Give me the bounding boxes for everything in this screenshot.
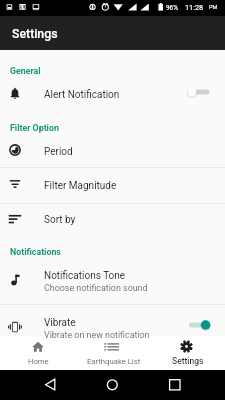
button[interactable]: Home [90, 370, 135, 400]
button[interactable] [0, 204, 225, 238]
button[interactable] [0, 133, 225, 167]
button[interactable] [0, 168, 225, 203]
staticText: Filter Magnitude [44, 180, 117, 192]
staticText: 11:28 [185, 3, 204, 12]
staticText: 96% [166, 4, 178, 12]
staticText: Settings [172, 356, 204, 366]
staticText: PM [209, 4, 218, 11]
button[interactable] [0, 261, 225, 304]
staticText: Notifications Tone [44, 270, 126, 282]
button[interactable]: Home [0, 336, 75, 371]
staticText: Notifications [10, 247, 61, 257]
button[interactable]: Back [28, 370, 73, 400]
button[interactable] [0, 305, 225, 336]
staticText: Period [44, 146, 73, 158]
staticText: Vibrate on new notification [44, 330, 150, 340]
staticText: Filter Option [10, 123, 59, 133]
button[interactable]: Earthquake List [75, 336, 150, 371]
staticText: Choose notification sound [44, 283, 148, 293]
staticText: Home [28, 357, 49, 366]
staticText: Settings [12, 27, 58, 41]
staticText: Earthquake List [87, 357, 141, 366]
button[interactable]: Recent apps [150, 370, 195, 400]
staticText: Alert Notification [44, 89, 120, 101]
button[interactable] [0, 78, 225, 112]
staticText: Sort by [44, 214, 76, 226]
staticText: General [10, 66, 41, 76]
staticText: Vibrate [44, 317, 76, 329]
button[interactable]: Settings [150, 336, 225, 371]
